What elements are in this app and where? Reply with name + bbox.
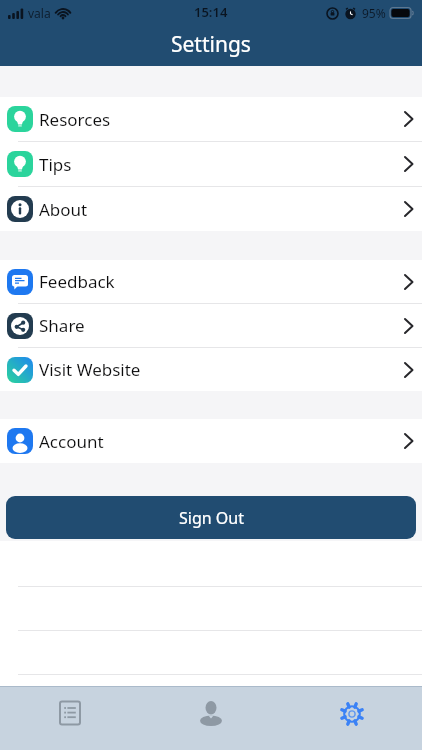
staticText: Resorces bbox=[39, 108, 111, 131]
staticText: About bbox=[39, 198, 88, 221]
staticText: Share bbox=[39, 314, 85, 337]
staticText: Sign Out bbox=[179, 507, 244, 529]
button[interactable]: Visit Website bbox=[0, 348, 422, 391]
button[interactable]: Share bbox=[0, 304, 422, 347]
staticText: Settings bbox=[171, 30, 251, 59]
button[interactable]: About bbox=[0, 187, 422, 231]
staticText: 15:14 bbox=[194, 3, 228, 21]
button[interactable]: Resorces bbox=[0, 97, 422, 141]
staticText: Account bbox=[39, 430, 104, 453]
button[interactable] bbox=[0, 700, 140, 726]
staticText: Visit Website bbox=[39, 358, 141, 381]
button[interactable]: Tips bbox=[0, 142, 422, 186]
button[interactable]: Sign Out bbox=[6, 496, 416, 539]
staticText: vala bbox=[28, 5, 51, 21]
button[interactable] bbox=[140, 700, 281, 728]
button[interactable] bbox=[281, 700, 422, 728]
staticText: 95% bbox=[362, 5, 386, 21]
button[interactable]: Feedback bbox=[0, 260, 422, 303]
staticText: Tips bbox=[39, 153, 72, 176]
staticText: Feedback bbox=[39, 270, 115, 293]
button[interactable]: Account bbox=[0, 419, 422, 463]
